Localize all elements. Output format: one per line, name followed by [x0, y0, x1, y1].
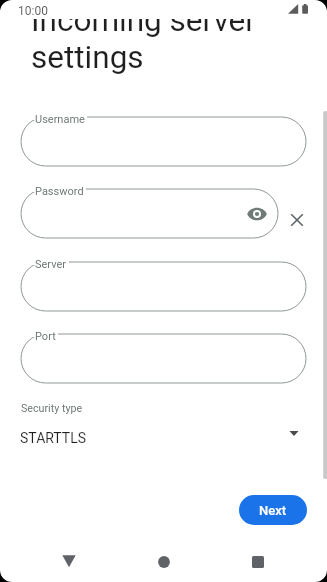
button[interactable]: Show password	[240, 197, 274, 231]
button[interactable]: Recent apps	[240, 541, 276, 582]
button[interactable]: Security type	[0, 394, 327, 452]
button[interactable]: Home	[146, 541, 182, 582]
button[interactable]: Port	[21, 324, 306, 393]
staticText: Incoming server settings	[31, 2, 256, 75]
staticText: Password	[35, 185, 84, 198]
button[interactable]: Password	[21, 179, 278, 248]
staticText: 10:00	[18, 4, 48, 18]
button[interactable]: Next	[239, 495, 307, 525]
button[interactable]: Back	[51, 540, 87, 582]
staticText: Port	[35, 330, 56, 343]
staticText: Server	[35, 258, 67, 271]
button[interactable]: Clear	[280, 203, 314, 237]
button[interactable]: Username	[21, 107, 306, 176]
button[interactable]: Server	[21, 252, 306, 321]
staticText: Username	[35, 113, 85, 126]
staticText: Next	[259, 503, 287, 518]
staticText: Security type	[21, 402, 83, 415]
staticText: STARTTLS	[20, 430, 87, 446]
